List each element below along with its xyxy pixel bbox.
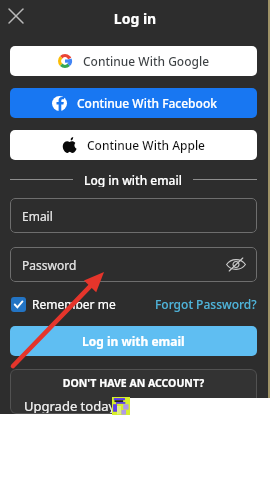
- staticText: Continue With Apple: [87, 137, 206, 153]
- button[interactable]: Forgot Password?: [155, 296, 257, 312]
- button[interactable]: Continue With Apple: [10, 130, 257, 160]
- button[interactable]: DON'T HAVE AN ACCOUNT?: [10, 369, 257, 414]
- button[interactable]: Log in with email: [10, 326, 257, 356]
- staticText: Log in: [0, 9, 270, 28]
- staticText: DON'T HAVE AN ACCOUNT?: [10, 376, 257, 390]
- button[interactable]: Continue With Facebook: [10, 88, 257, 118]
- staticText: Upgrade today: [24, 397, 116, 414]
- staticText: Log in with email: [82, 333, 185, 349]
- staticText: Remember me: [32, 296, 116, 312]
- staticText: Password: [22, 257, 77, 273]
- button[interactable]: Email: [10, 198, 257, 233]
- staticText: Email: [22, 208, 53, 224]
- button[interactable]: Close: [5, 5, 27, 27]
- button[interactable]: Continue With Google: [10, 46, 257, 76]
- button[interactable]: Remember me: [11, 296, 116, 312]
- button[interactable]: Password: [10, 247, 257, 282]
- button[interactable]: Show password: [226, 258, 246, 271]
- staticText: Continue With Google: [83, 53, 210, 69]
- staticText: Log in with email: [84, 172, 182, 187]
- staticText: Continue With Facebook: [77, 95, 217, 111]
